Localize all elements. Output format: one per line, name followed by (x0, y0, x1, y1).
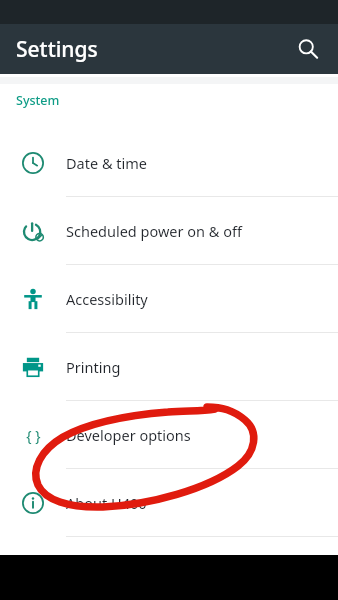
staticText: System (16, 92, 60, 109)
staticText: Developer options (66, 425, 191, 445)
staticText: Date & time (66, 153, 147, 173)
button[interactable]: Accessibility (0, 265, 338, 333)
button[interactable]: { } (0, 401, 338, 469)
button[interactable]: Search (288, 29, 328, 69)
button[interactable]: Date & time (0, 129, 338, 197)
staticText: About H400 (66, 493, 147, 513)
staticText: Scheduled power on & off (66, 221, 242, 241)
button[interactable]: Scheduled power on & off (0, 197, 338, 265)
button[interactable]: About H400 (0, 469, 338, 537)
button[interactable]: Printing (0, 333, 338, 401)
staticText: Printing (66, 357, 121, 377)
staticText: Accessibility (66, 289, 148, 309)
staticText: { } (26, 426, 41, 445)
staticText: Settings (16, 35, 98, 64)
